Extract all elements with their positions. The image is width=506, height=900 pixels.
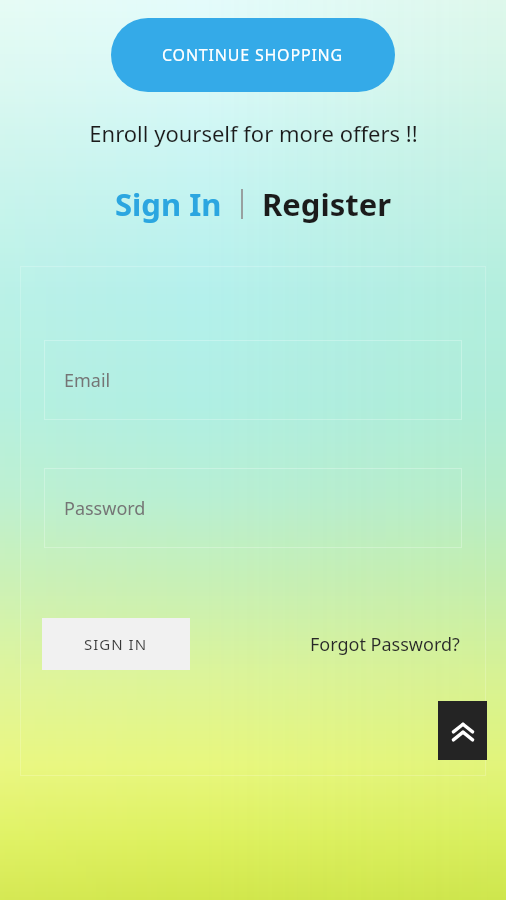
button[interactable]: Register [256, 180, 398, 228]
staticText: Password [64, 496, 146, 521]
button[interactable]: Password [44, 468, 462, 548]
button[interactable]: Scroll to top [438, 701, 487, 760]
staticText: Forgot Password? [310, 632, 460, 657]
button[interactable]: SIGN IN [42, 618, 190, 670]
staticText: Sign In [115, 183, 222, 225]
staticText: Email [64, 368, 111, 393]
button[interactable]: Forgot Password? [306, 626, 464, 663]
staticText: Enroll yourself for more offers !! [89, 118, 418, 148]
button[interactable]: Email [44, 340, 462, 420]
staticText: SIGN IN [84, 634, 148, 654]
staticText: CONTINUE SHOPPING [162, 44, 344, 66]
button[interactable]: CONTINUE SHOPPING [111, 18, 395, 92]
button[interactable]: Sign In [109, 180, 228, 228]
staticText: Register [262, 183, 392, 225]
